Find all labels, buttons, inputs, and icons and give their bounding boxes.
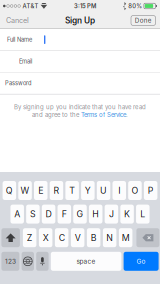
staticText: Go <box>137 257 146 265</box>
staticText: . <box>126 111 128 119</box>
staticText: N <box>106 232 113 243</box>
button[interactable]: F <box>57 205 71 224</box>
button[interactable]: X <box>39 228 52 247</box>
staticText: E <box>38 185 43 196</box>
staticText: X <box>43 232 49 243</box>
staticText: W <box>20 185 29 196</box>
button[interactable]: Shift <box>1 228 20 247</box>
staticText: T <box>69 185 75 196</box>
staticText: 123 <box>5 257 16 265</box>
staticText: space <box>77 257 96 265</box>
staticText: G <box>76 209 83 219</box>
button[interactable]: G <box>73 205 87 224</box>
staticText: Terms of Service <box>81 111 126 119</box>
staticText: Sign Up <box>65 15 95 25</box>
button[interactable]: Done <box>131 12 160 29</box>
button[interactable]: Password <box>0 73 160 94</box>
button[interactable]: B <box>87 228 100 247</box>
button[interactable]: O <box>128 181 142 200</box>
staticText: S <box>30 209 36 219</box>
staticText: I <box>118 185 120 196</box>
staticText: M <box>122 232 130 243</box>
staticText: V <box>75 232 81 243</box>
staticText: P <box>148 185 154 196</box>
staticText: Z <box>27 232 33 243</box>
button[interactable]: Delete <box>136 228 159 247</box>
button[interactable]: space <box>51 252 121 271</box>
button[interactable]: C <box>55 228 68 247</box>
button[interactable]: Full Name <box>0 29 160 51</box>
staticText: K <box>124 209 130 219</box>
button[interactable]: S <box>26 205 40 224</box>
staticText: U <box>100 185 107 196</box>
button[interactable]: W <box>18 181 32 200</box>
staticText: Q <box>6 185 13 196</box>
staticText: and agree to the <box>32 111 81 119</box>
button[interactable]: E <box>34 181 47 200</box>
button[interactable]: M <box>119 228 132 247</box>
staticText: 80% <box>128 2 142 10</box>
button[interactable]: L <box>136 205 150 224</box>
button[interactable]: Q <box>3 181 16 200</box>
button[interactable]: Terms of Service <box>81 111 126 119</box>
staticText: Password <box>5 80 32 87</box>
staticText: O <box>131 185 138 196</box>
staticText: 3:15 PM <box>74 2 96 10</box>
button[interactable]: P <box>144 181 157 200</box>
staticText: C <box>59 232 65 243</box>
staticText: B <box>91 232 97 243</box>
staticText: Cancel <box>6 16 29 25</box>
button[interactable]: Go <box>124 252 159 271</box>
staticText: H <box>92 209 99 219</box>
button[interactable]: Cancel <box>0 12 35 29</box>
button[interactable]: Next keyboard <box>22 252 34 271</box>
button[interactable]: V <box>71 228 84 247</box>
staticText: Y <box>85 185 91 196</box>
button[interactable]: D <box>42 205 55 224</box>
staticText: A <box>14 209 20 219</box>
button[interactable]: Dictate <box>36 252 49 271</box>
button[interactable]: U <box>97 181 110 200</box>
staticText: R <box>53 185 59 196</box>
staticText: Done <box>135 17 152 24</box>
button[interactable]: A <box>10 205 24 224</box>
button[interactable]: Z <box>23 228 36 247</box>
staticText: AT&T <box>22 2 38 10</box>
button[interactable]: T <box>65 181 79 200</box>
staticText: J <box>109 209 114 219</box>
button[interactable]: I <box>112 181 126 200</box>
staticText: L <box>140 209 145 219</box>
staticText: By signing up you indicate that you have… <box>14 103 146 111</box>
staticText: D <box>46 209 52 219</box>
button[interactable]: K <box>120 205 134 224</box>
staticText: Email <box>19 58 32 65</box>
staticText: Full Name <box>7 36 32 43</box>
button[interactable]: H <box>89 205 102 224</box>
button[interactable]: Y <box>81 181 95 200</box>
button[interactable]: J <box>105 205 118 224</box>
staticText: F <box>62 209 67 219</box>
button[interactable]: N <box>103 228 116 247</box>
button[interactable]: Email <box>0 51 160 73</box>
button[interactable]: 123 <box>1 252 19 271</box>
button[interactable]: R <box>50 181 63 200</box>
